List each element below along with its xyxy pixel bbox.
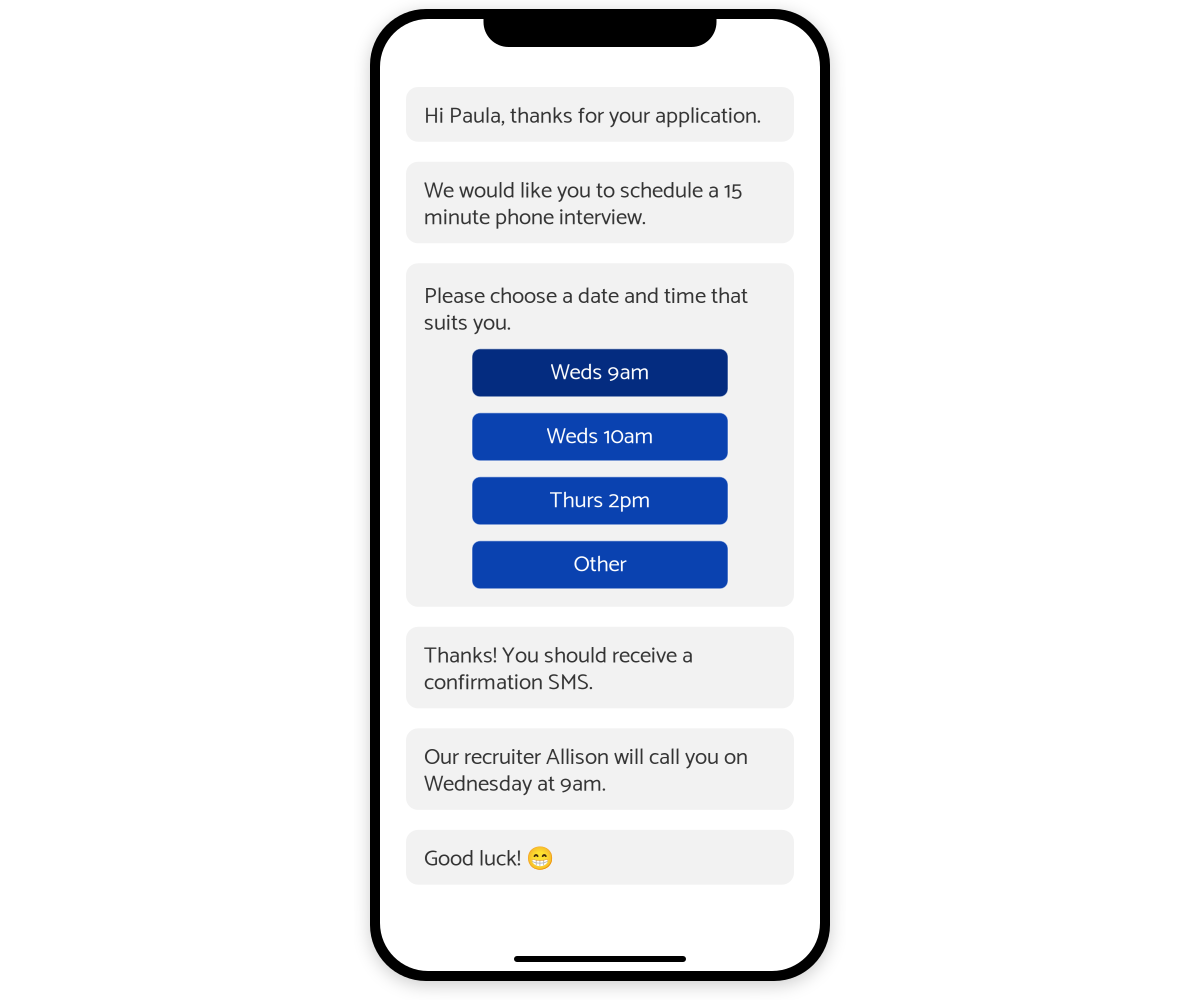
button[interactable]: Weds 10am <box>472 413 728 461</box>
staticText: Hi Paula, thanks for your application. <box>424 103 761 130</box>
button[interactable]: Thurs 2pm <box>472 477 728 525</box>
staticText: minute phone interview. <box>424 204 646 231</box>
staticText: Wednesday at 9am. <box>424 771 606 798</box>
staticText: confirmation SMS. <box>424 670 593 696</box>
staticText: Please choose a date and time that <box>424 283 748 310</box>
staticText: We would like you to schedule a 15 <box>424 178 742 205</box>
button[interactable]: Weds 9am <box>472 349 728 397</box>
staticText: Weds 9am <box>550 359 649 386</box>
staticText: Other <box>573 551 626 578</box>
staticText: Weds 10am <box>546 423 653 450</box>
staticText: Our recruiter Allison will call you on <box>424 744 748 771</box>
staticText: Thanks! You should receive a <box>424 643 693 670</box>
staticText: Thurs 2pm <box>549 487 650 514</box>
staticText: suits you. <box>424 310 511 337</box>
staticText: Good luck! 😁 <box>424 846 554 873</box>
button[interactable]: Other <box>472 541 728 589</box>
